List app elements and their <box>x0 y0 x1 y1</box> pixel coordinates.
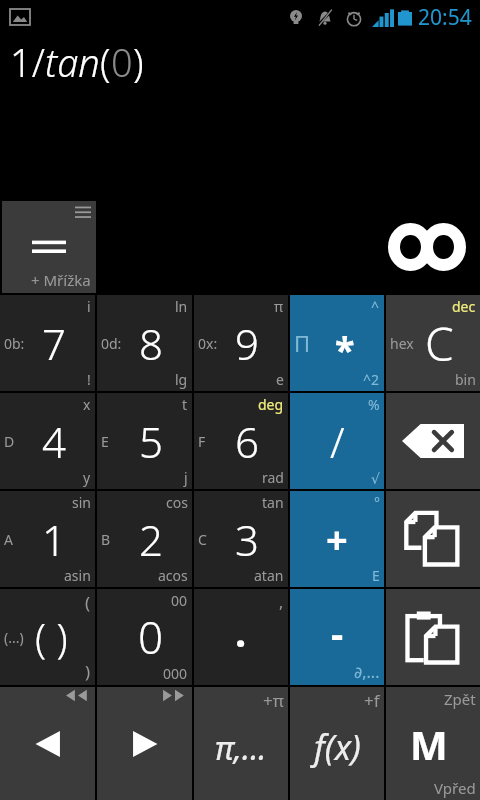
staticText: 4 <box>42 413 66 470</box>
staticText: 7 <box>42 315 66 372</box>
staticText: 3 <box>235 511 259 568</box>
staticText: 000 <box>163 664 188 683</box>
staticText: ( <box>85 591 91 614</box>
staticText: + Mřížka <box>31 270 91 290</box>
staticText: . <box>235 604 247 658</box>
staticText: +f <box>364 689 380 712</box>
staticText: +π <box>263 689 284 712</box>
staticText: hex <box>390 334 414 353</box>
staticText: / <box>330 413 345 470</box>
staticText: 0 <box>138 607 164 667</box>
staticText: e <box>276 370 284 389</box>
staticText: 0b: <box>4 334 25 353</box>
button[interactable]: B <box>97 491 192 587</box>
button[interactable]: Cursor left <box>0 687 95 800</box>
staticText: ) <box>85 660 91 683</box>
staticText: C <box>425 312 454 375</box>
staticText: dec <box>452 297 476 316</box>
staticText: 00 <box>171 591 188 610</box>
staticText: i <box>87 297 91 316</box>
staticText: ^2 <box>363 370 380 389</box>
button[interactable]: Cursor right <box>97 687 192 800</box>
staticText: f(x) <box>314 724 361 770</box>
staticText: rad <box>262 468 284 487</box>
staticText: ! <box>87 370 91 389</box>
button[interactable]: F <box>194 393 288 489</box>
button[interactable]: D <box>0 393 95 489</box>
button[interactable]: Clear <box>386 295 480 391</box>
staticText: Π <box>294 328 311 358</box>
staticText: 1/ <box>10 36 45 88</box>
staticText: ) <box>133 36 144 88</box>
staticText: t <box>182 395 188 414</box>
button[interactable]: . <box>194 589 288 685</box>
staticText: 0d: <box>101 334 122 353</box>
button[interactable]: f(x) <box>290 687 384 800</box>
staticText: 0 <box>111 36 133 88</box>
button[interactable]: 0b: <box>0 295 95 391</box>
staticText: acos <box>158 566 188 585</box>
staticText: A <box>4 530 13 549</box>
button[interactable]: Plus <box>290 491 384 587</box>
staticText: % <box>368 395 380 414</box>
staticText: y <box>83 468 91 487</box>
staticText: tan <box>45 36 100 88</box>
button[interactable]: Minus <box>290 589 384 685</box>
button[interactable]: M <box>386 687 480 800</box>
staticText: M <box>410 717 448 771</box>
staticText: Zpět <box>444 689 476 709</box>
staticText: atan <box>254 566 284 585</box>
button[interactable]: 0 <box>97 589 192 685</box>
staticText: ° <box>374 493 380 512</box>
staticText: 6 <box>235 413 259 470</box>
staticText: * <box>335 325 355 374</box>
staticText: π,... <box>215 726 267 770</box>
button[interactable]: (...) <box>0 589 95 685</box>
staticText: 0x: <box>198 334 218 353</box>
button[interactable]: π,... <box>194 687 288 800</box>
staticText: 5 <box>139 413 163 470</box>
staticText: 1 <box>42 511 66 568</box>
staticText: (...) <box>4 628 24 647</box>
staticText: - <box>331 607 344 659</box>
staticText: ∂,... <box>354 661 380 683</box>
staticText: √ <box>371 471 380 487</box>
staticText: ( <box>100 36 111 88</box>
button[interactable]: Paste <box>386 589 480 685</box>
staticText: E <box>372 566 380 585</box>
staticText: deg <box>258 395 284 414</box>
staticText: cos <box>166 493 188 512</box>
staticText: sin <box>72 493 91 512</box>
button[interactable]: Multiply <box>290 295 384 391</box>
staticText: ( ) <box>35 610 68 664</box>
button[interactable]: A <box>0 491 95 587</box>
button[interactable]: C <box>194 491 288 587</box>
button[interactable]: E <box>97 393 192 489</box>
staticText: bin <box>455 370 476 389</box>
staticText: x <box>83 395 91 414</box>
staticText: ln <box>175 297 188 316</box>
staticText: Vpřed <box>434 778 476 798</box>
staticText: 9 <box>235 315 259 372</box>
staticText: 8 <box>139 315 163 372</box>
staticText: 20:54 <box>418 3 472 32</box>
button[interactable]: + Mřížka <box>2 201 96 293</box>
staticText: C <box>198 530 207 549</box>
staticText: π <box>274 297 284 316</box>
staticText: E <box>101 432 109 451</box>
staticText: , <box>279 591 284 613</box>
staticText: F <box>198 432 206 451</box>
staticText: + <box>326 513 348 565</box>
button[interactable]: 0d: <box>97 295 192 391</box>
button[interactable]: Copy <box>386 491 480 587</box>
button[interactable]: Divide <box>290 393 384 489</box>
staticText: j <box>184 468 188 487</box>
button[interactable]: Backspace <box>386 393 480 489</box>
staticText: 2 <box>139 511 163 568</box>
staticText: lg <box>175 370 188 389</box>
staticText: asin <box>64 566 91 585</box>
staticText: B <box>101 530 111 549</box>
staticText: D <box>4 432 15 451</box>
staticText: ^ <box>371 297 380 316</box>
button[interactable]: 0x: <box>194 295 288 391</box>
